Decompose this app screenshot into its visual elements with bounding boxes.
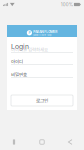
button[interactable]: Home [32,135,52,149]
staticText: PAEAN FLOWER [33,30,57,34]
button[interactable]: Recent apps [4,135,24,149]
staticText: P [28,31,30,35]
staticText: 아이디 [11,58,23,65]
button[interactable]: 로그인 [11,95,73,106]
staticText: paean flower shop [33,34,51,36]
staticText: 아이디를 입력하세요 [11,46,48,53]
button[interactable]: Back [60,135,80,149]
staticText: 비밀번호 [11,71,27,78]
staticText: 100% [61,2,73,7]
staticText: Login [11,42,29,51]
staticText: 로그인 [36,97,48,104]
